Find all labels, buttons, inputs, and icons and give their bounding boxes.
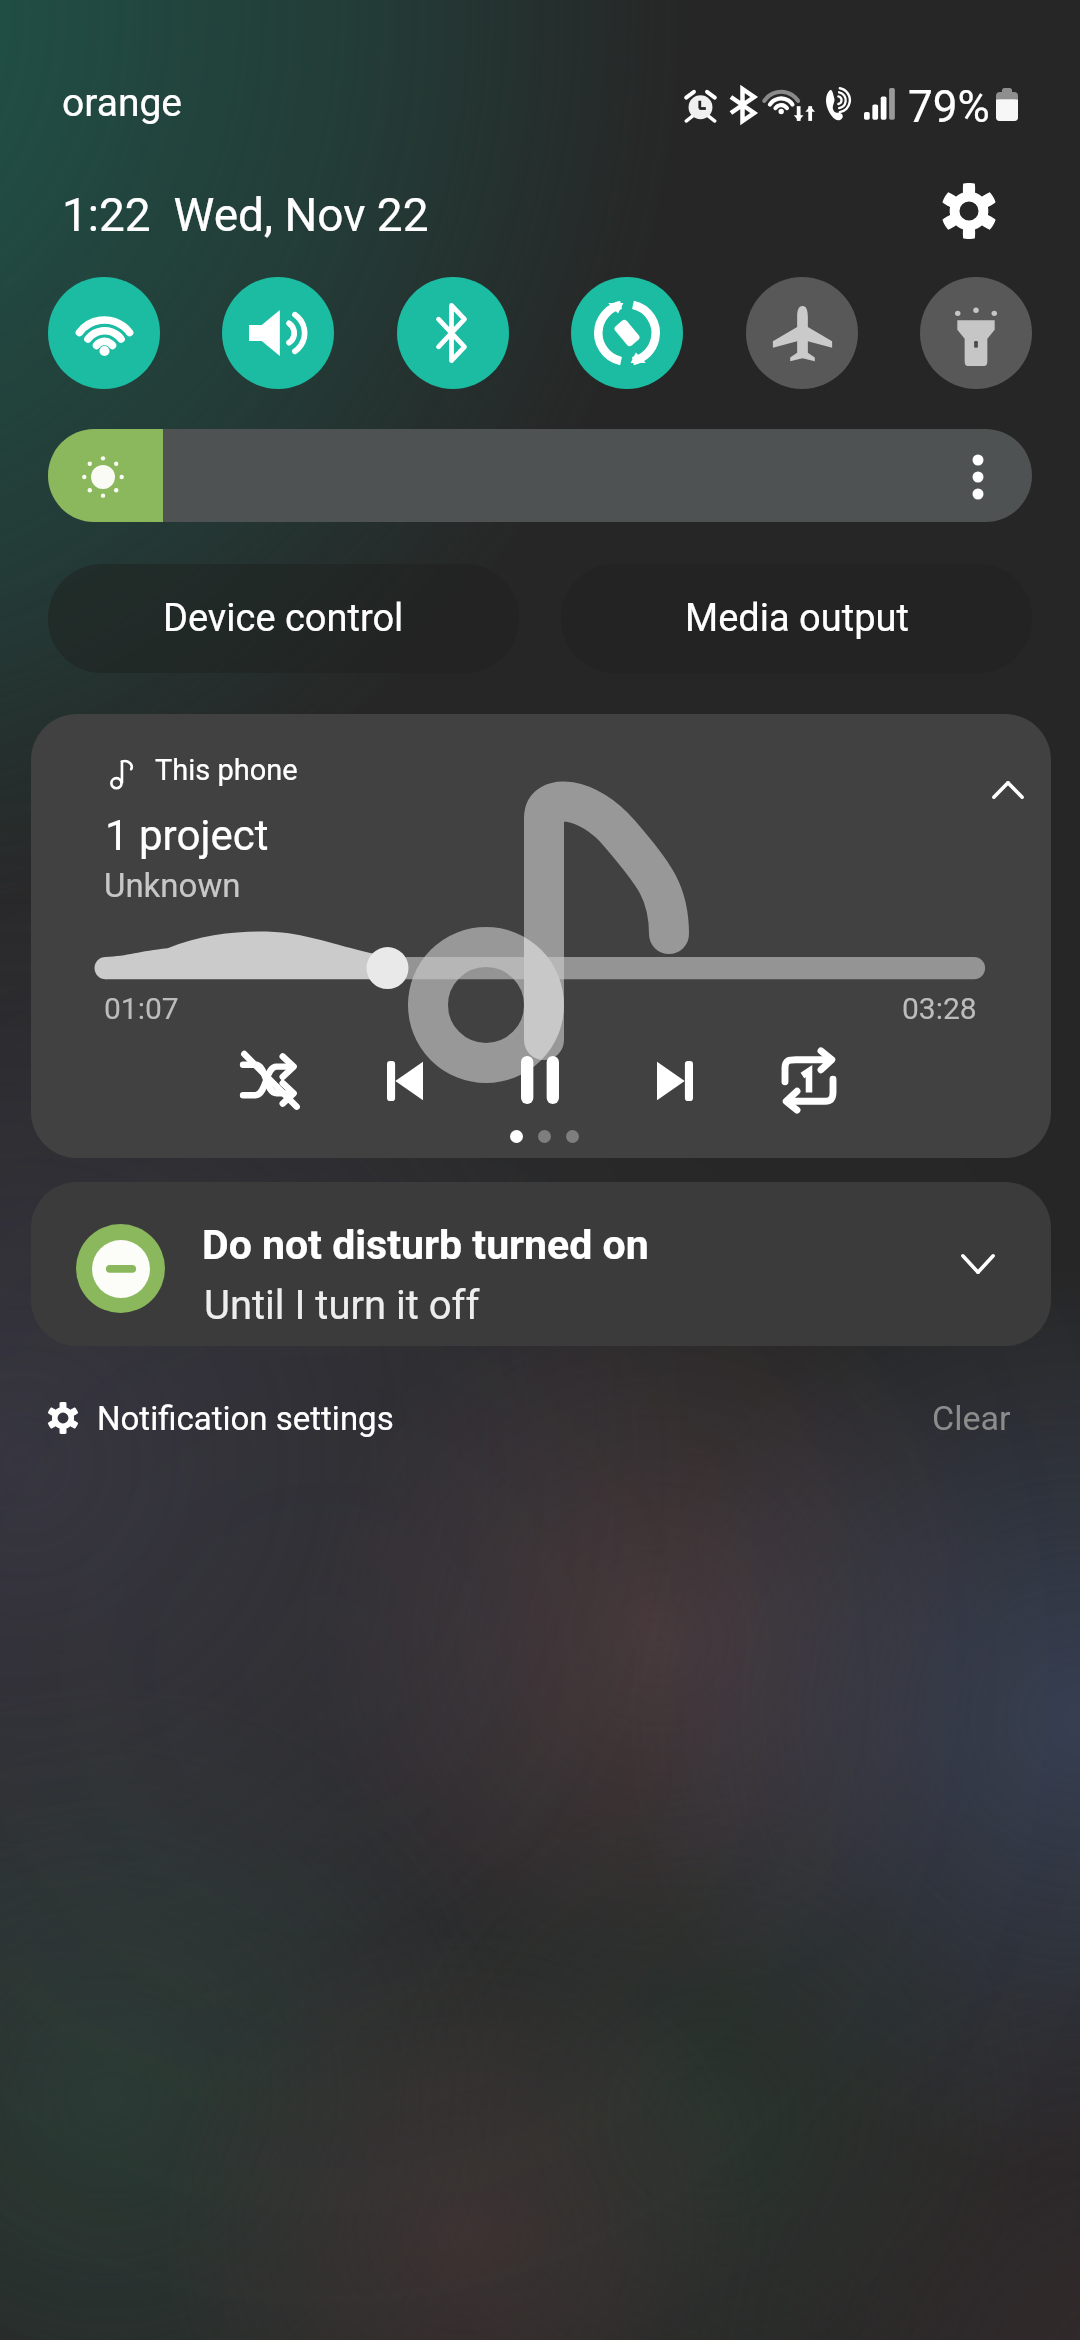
button[interactable]: Wi-Fi [48, 277, 160, 389]
button[interactable]: This phone [31, 714, 1051, 1158]
button[interactable]: Settings [925, 167, 1013, 255]
staticText: Unknown [104, 866, 241, 905]
button[interactable]: Clear [910, 1390, 1011, 1446]
staticText: Do not disturb turned on [202, 1221, 649, 1269]
button[interactable]: Previous [361, 1037, 449, 1125]
button[interactable]: Repeat one [765, 1036, 853, 1124]
button[interactable]: Media output [561, 564, 1032, 673]
button[interactable]: Airplane mode [746, 277, 858, 389]
staticText: orange [62, 80, 183, 126]
button[interactable]: Collapse [964, 746, 1051, 834]
button[interactable]: Shuffle [226, 1036, 314, 1124]
staticText: 01:07 [104, 991, 179, 1026]
button[interactable]: Sound [222, 277, 334, 389]
staticText: Until I turn it off [204, 1282, 480, 1329]
staticText: Media output [685, 596, 909, 641]
button[interactable]: Bluetooth [397, 277, 509, 389]
staticText: 79% [908, 81, 990, 133]
staticText: 1 project [105, 811, 269, 860]
staticText: 1:22 Wed, Nov 22 [62, 188, 429, 242]
button[interactable]: Device control [48, 564, 519, 673]
staticText: This phone [155, 753, 298, 787]
button[interactable]: Flashlight [920, 277, 1032, 389]
button[interactable]: Pause [496, 1036, 584, 1124]
button[interactable]: Do not disturb turned on [31, 1182, 1051, 1346]
button[interactable]: Expand [934, 1220, 1022, 1308]
staticText: 03:28 [902, 991, 977, 1026]
button[interactable]: Brightness [48, 429, 1032, 522]
button[interactable]: Auto rotate [571, 277, 683, 389]
staticText: Device control [163, 596, 404, 641]
button[interactable]: Next [631, 1037, 719, 1125]
button[interactable]: Notification settings [48, 1390, 394, 1446]
staticText: Clear [932, 1398, 1011, 1438]
staticText: Notification settings [97, 1399, 394, 1438]
